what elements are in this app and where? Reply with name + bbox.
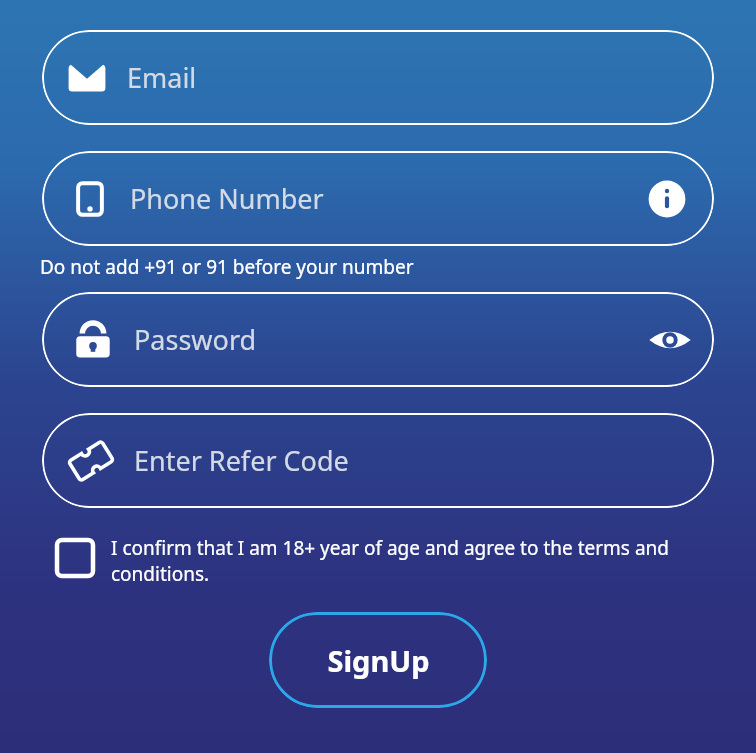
staticText: Password bbox=[134, 321, 646, 358]
button[interactable]: Enter Refer Code bbox=[42, 413, 714, 508]
button[interactable]: SignUp bbox=[269, 612, 487, 708]
button[interactable]: I confirm that I am 18+ year of age and … bbox=[55, 535, 701, 586]
button[interactable]: Phone Number bbox=[42, 151, 714, 246]
staticText: I confirm that I am 18+ year of age and … bbox=[111, 535, 701, 586]
button[interactable]: Email bbox=[42, 30, 714, 125]
staticText: Do not add +91 or 91 before your number bbox=[40, 254, 414, 280]
button[interactable]: Phone number info bbox=[644, 176, 690, 222]
button[interactable]: Show password bbox=[646, 316, 694, 364]
staticText: Email bbox=[127, 59, 197, 96]
staticText: Phone Number bbox=[130, 180, 644, 217]
staticText: SignUp bbox=[327, 641, 430, 680]
staticText: Enter Refer Code bbox=[134, 442, 349, 479]
button[interactable]: Password bbox=[42, 292, 714, 387]
